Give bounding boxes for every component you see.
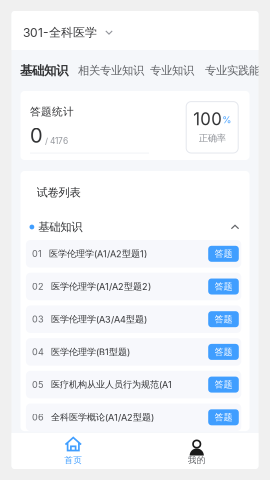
staticText: 答题 — [214, 248, 232, 259]
staticText: 答题统计 — [30, 105, 74, 118]
button[interactable]: 专业实践能 — [205, 63, 260, 78]
staticText: 医学伦理学(B1型题) — [51, 346, 130, 358]
staticText: 试卷列表 — [36, 185, 80, 200]
staticText: 06 — [32, 412, 44, 423]
staticText: % — [222, 114, 231, 125]
staticText: 03 — [32, 314, 44, 325]
staticText: 100 — [193, 109, 222, 129]
staticText: 正确率 — [199, 132, 226, 144]
staticText: 全科医学概论(A1/A2型题) — [51, 412, 154, 423]
staticText: 首页 — [64, 455, 82, 465]
staticText: 0 — [30, 123, 43, 148]
staticText: 医疗机构从业人员行为规范(A1 — [51, 379, 172, 390]
staticText: 医学伦理学(A1/A2型题1) — [49, 248, 147, 259]
staticText: 05 — [32, 379, 44, 390]
staticText: 基础知识 — [38, 220, 82, 234]
button[interactable]: 02 — [26, 273, 241, 300]
staticText: 答题 — [214, 412, 232, 423]
button[interactable]: 相关专业知识 — [78, 63, 144, 78]
staticText: 专业实践能 — [205, 63, 260, 78]
button[interactable]: 04 — [26, 338, 241, 366]
staticText: 专业知识 — [150, 63, 194, 78]
staticText: / 4176 — [45, 136, 68, 146]
button[interactable]: 基础知识 — [20, 63, 68, 78]
staticText: 01 — [32, 248, 42, 259]
staticText: 答题 — [214, 313, 232, 325]
staticText: 答题 — [214, 281, 232, 292]
button[interactable]: 06 — [26, 403, 241, 431]
button[interactable]: 05 — [26, 371, 241, 398]
button[interactable]: 我的 — [135, 433, 258, 469]
staticText: 301-全科医学 — [23, 25, 97, 40]
staticText: 04 — [32, 346, 44, 357]
staticText: 基础知识 — [20, 63, 68, 78]
button[interactable]: 03 — [26, 305, 241, 333]
staticText: 答题 — [214, 346, 232, 358]
staticText: 相关专业知识 — [78, 63, 144, 78]
staticText: 我的 — [188, 455, 206, 465]
button[interactable]: 基础知识 — [20, 214, 249, 240]
staticText: 医学伦理学(A1/A2型题2) — [51, 281, 151, 292]
staticText: 02 — [32, 281, 44, 292]
button[interactable]: 专业知识 — [150, 63, 194, 78]
staticText: 医学伦理学(A3/A4型题) — [51, 313, 147, 325]
button[interactable]: 01 — [26, 240, 241, 268]
staticText: 答题 — [214, 379, 232, 390]
button[interactable]: 首页 — [11, 433, 135, 469]
